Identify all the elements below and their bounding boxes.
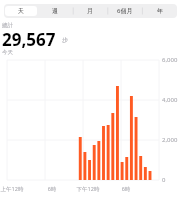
staticText: 月 xyxy=(87,7,93,15)
staticText: 6時 xyxy=(106,185,146,193)
staticText: 上午12時 xyxy=(0,185,32,193)
staticText: 6,000 xyxy=(162,56,178,64)
staticText: 天 xyxy=(18,7,24,15)
staticText: 步 xyxy=(62,36,68,44)
staticText: 今天 xyxy=(2,49,13,56)
staticText: 2,000 xyxy=(162,136,178,144)
button[interactable]: 6個月 xyxy=(108,6,141,16)
staticText: 總計 xyxy=(2,22,13,29)
staticText: 年 xyxy=(157,7,163,15)
button[interactable]: 週 xyxy=(39,6,71,16)
staticText: 週 xyxy=(52,7,58,15)
button[interactable]: 年 xyxy=(143,6,176,16)
staticText: 下午12時 xyxy=(68,185,108,193)
button[interactable]: 月 xyxy=(73,6,106,16)
button[interactable]: 天 xyxy=(5,6,37,16)
staticText: 6時 xyxy=(32,185,72,193)
staticText: 6個月 xyxy=(117,7,133,15)
staticText: 29,567 xyxy=(2,28,56,51)
staticText: 4,000 xyxy=(162,96,178,104)
staticText: 0 xyxy=(162,176,166,184)
